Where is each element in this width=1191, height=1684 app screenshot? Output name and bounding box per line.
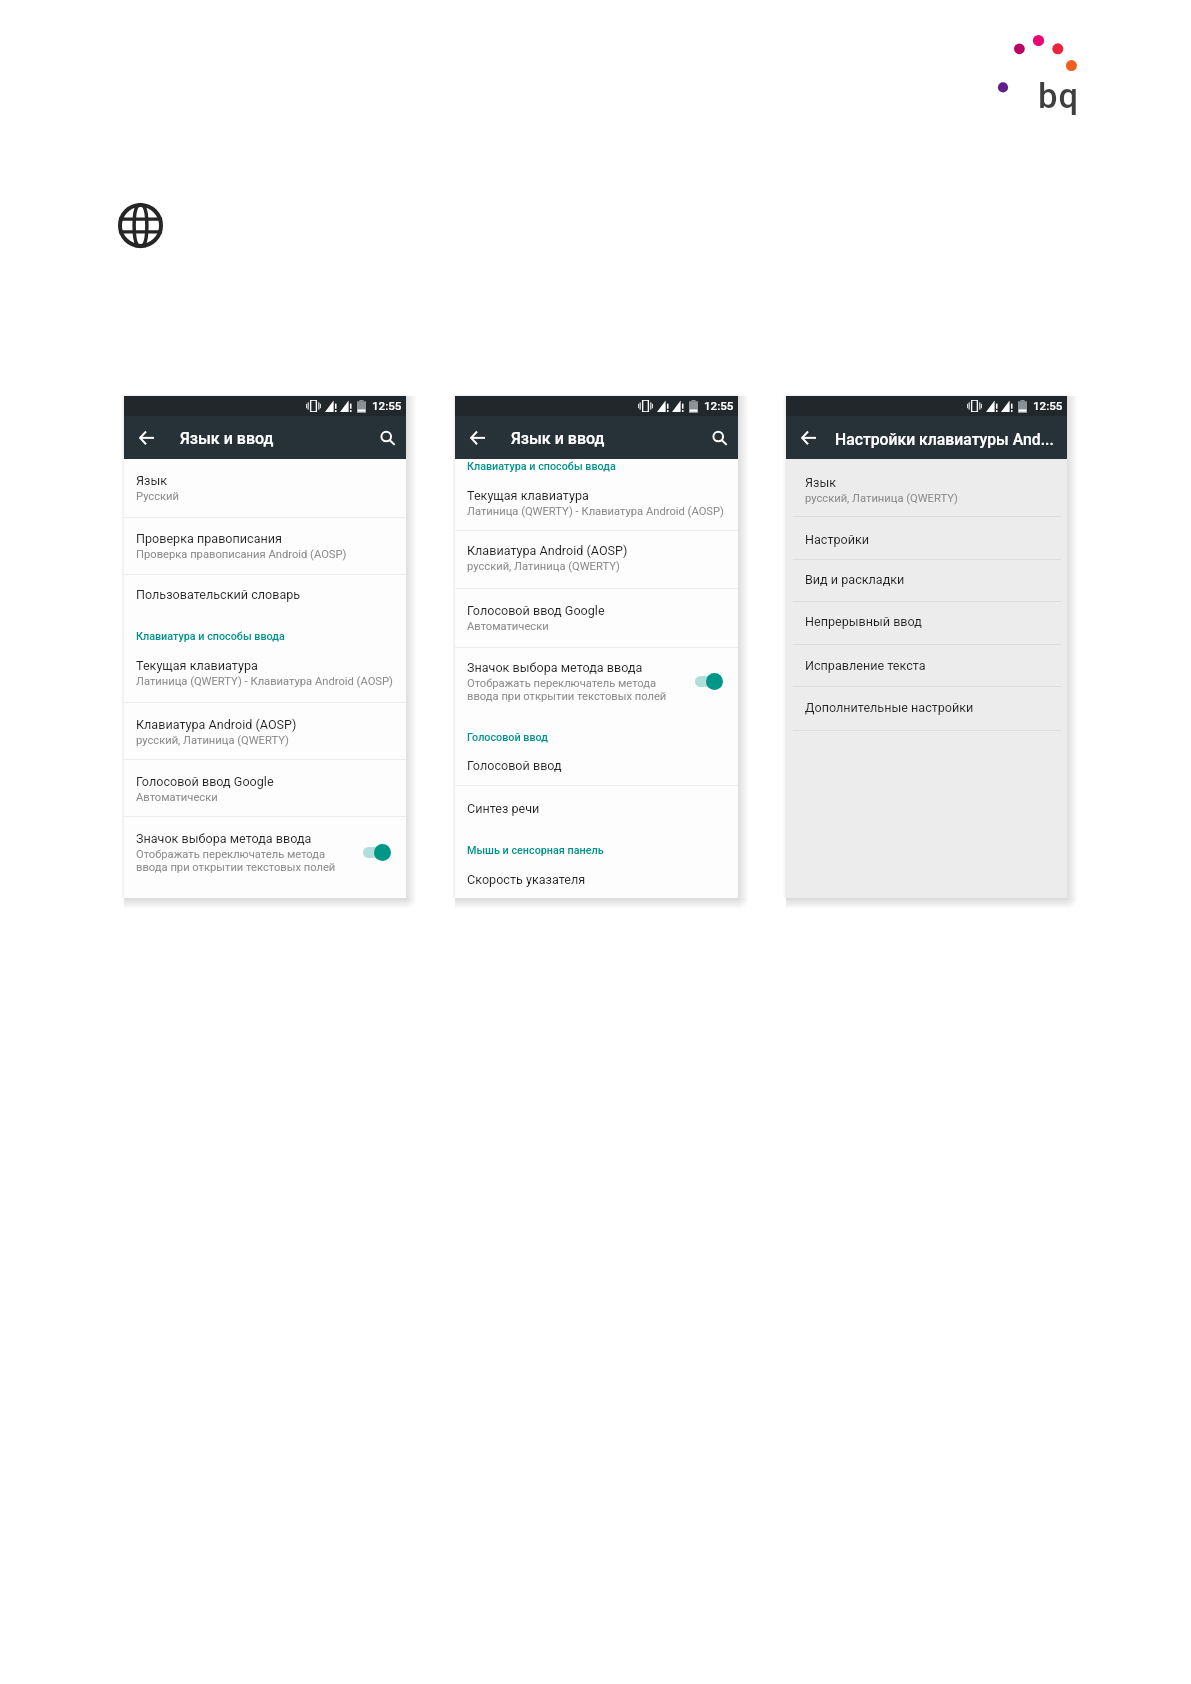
- button[interactable]: Язык: [786, 460, 1067, 516]
- button[interactable]: Значок выбора метода ввода: [124, 817, 406, 898]
- staticText: Латиница (QWERTY) - Клавиатура Android (…: [467, 505, 724, 518]
- button[interactable]: Исправление текста: [786, 645, 1067, 686]
- staticText: Дополнительные настройки: [805, 700, 974, 715]
- staticText: 12:55: [704, 399, 734, 413]
- staticText: Клавиатура и способы ввода: [136, 630, 285, 643]
- staticText: Язык: [805, 475, 836, 490]
- button[interactable]: Language: [118, 203, 163, 248]
- button[interactable]: Back: [470, 431, 485, 445]
- button[interactable]: Пользовательский словарь: [124, 575, 406, 627]
- button[interactable]: Search: [713, 431, 727, 445]
- staticText: Непрерывный ввод: [805, 614, 922, 629]
- staticText: русский, Латиница (QWERTY): [136, 734, 289, 747]
- staticText: Клавиатура Android (AOSP): [467, 543, 628, 558]
- button[interactable]: Язык: [124, 459, 406, 517]
- button[interactable]: Значок выбора метода ввода: [455, 648, 738, 728]
- staticText: Язык и ввод: [511, 429, 605, 448]
- staticText: русский, Латиница (QWERTY): [467, 560, 620, 573]
- staticText: русский, Латиница (QWERTY): [805, 492, 958, 505]
- staticText: Язык и ввод: [180, 429, 274, 448]
- button[interactable]: Текущая клавиатура: [455, 478, 738, 530]
- staticText: ввода при открытии текстовых полей: [467, 690, 667, 703]
- button[interactable]: Back: [801, 431, 816, 445]
- button[interactable]: Дополнительные настройки: [786, 687, 1067, 730]
- staticText: Отображать переключатель метода: [467, 677, 657, 690]
- staticText: 12:55: [372, 399, 402, 413]
- button[interactable]: Голосовой ввод: [455, 748, 738, 785]
- staticText: Язык: [136, 473, 167, 488]
- staticText: Автоматически: [467, 620, 549, 633]
- staticText: Текущая клавиатура: [136, 658, 258, 673]
- staticText: Проверка правописания Android (AOSP): [136, 548, 347, 561]
- button[interactable]: Search: [381, 431, 395, 445]
- button[interactable]: Голосовой ввод Google: [455, 589, 738, 648]
- button[interactable]: Непрерывный ввод: [786, 602, 1067, 644]
- staticText: Латиница (QWERTY) - Клавиатура Android (…: [136, 675, 393, 688]
- staticText: Проверка правописания: [136, 531, 282, 546]
- staticText: 12:55: [1033, 399, 1063, 413]
- staticText: Русский: [136, 490, 180, 503]
- staticText: Синтез речи: [467, 801, 540, 816]
- button[interactable]: Голосовой ввод Google: [124, 760, 406, 816]
- button[interactable]: Текущая клавиатура: [124, 648, 406, 702]
- staticText: Значок выбора метода ввода: [136, 831, 312, 846]
- staticText: Клавиатура и способы ввода: [467, 460, 616, 473]
- button[interactable]: Вид и раскладки: [786, 560, 1067, 601]
- staticText: Клавиатура Android (AOSP): [136, 717, 297, 732]
- staticText: bq: [1038, 76, 1080, 117]
- button[interactable]: Настройки: [786, 517, 1067, 559]
- button[interactable]: Клавиатура Android (AOSP): [455, 531, 738, 588]
- staticText: Мышь и сенсорная панель: [467, 844, 604, 857]
- staticText: Голосовой ввод: [467, 758, 562, 773]
- staticText: Отображать переключатель метода: [136, 848, 326, 861]
- staticText: Значок выбора метода ввода: [467, 660, 643, 675]
- staticText: Настройки: [805, 532, 870, 547]
- staticText: Скорость указателя: [467, 872, 586, 887]
- button[interactable]: Проверка правописания: [124, 518, 406, 574]
- staticText: Пользовательский словарь: [136, 587, 301, 602]
- staticText: ввода при открытии текстовых полей: [136, 861, 336, 874]
- staticText: Голосовой ввод Google: [136, 774, 274, 789]
- button[interactable]: Скорость указателя: [455, 862, 738, 898]
- staticText: Настройки клавиатуры And...: [835, 430, 1054, 448]
- staticText: Текущая клавиатура: [467, 488, 589, 503]
- staticText: Голосовой ввод: [467, 731, 548, 744]
- staticText: Автоматически: [136, 791, 218, 804]
- staticText: Исправление текста: [805, 658, 926, 673]
- button[interactable]: Синтез речи: [455, 786, 738, 829]
- button[interactable]: Клавиатура Android (AOSP): [124, 703, 406, 759]
- staticText: Голосовой ввод Google: [467, 603, 605, 618]
- button[interactable]: Back: [139, 431, 154, 445]
- staticText: Вид и раскладки: [805, 572, 905, 587]
